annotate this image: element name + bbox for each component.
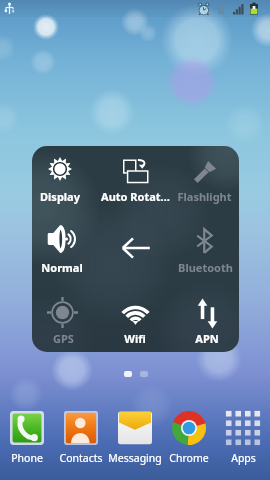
button[interactable] <box>170 146 239 215</box>
staticText: Phone <box>11 451 43 465</box>
staticText: APN <box>195 331 219 346</box>
button[interactable] <box>101 283 170 352</box>
staticText: Contacts <box>59 451 103 465</box>
staticText: Wifi <box>124 331 146 346</box>
button[interactable] <box>108 394 162 480</box>
staticText: Flashlight <box>177 189 232 204</box>
staticText: Messaging <box>108 451 162 465</box>
staticText: Apps <box>231 451 256 465</box>
button[interactable] <box>32 283 101 352</box>
staticText: Auto Rotat… <box>101 189 170 204</box>
staticText: Bluetooth <box>178 260 233 275</box>
staticText: Chrome <box>169 451 209 465</box>
button[interactable] <box>32 215 101 284</box>
button[interactable] <box>0 394 54 480</box>
button[interactable] <box>32 146 101 215</box>
button[interactable] <box>162 394 216 480</box>
staticText: Normal <box>41 260 83 275</box>
staticText: Display <box>40 189 80 204</box>
button[interactable] <box>170 215 239 284</box>
button[interactable] <box>101 146 170 215</box>
button[interactable] <box>170 283 239 352</box>
staticText: GPS <box>53 331 74 346</box>
button[interactable] <box>216 394 270 480</box>
button[interactable] <box>54 394 108 480</box>
button[interactable]: Back <box>101 215 170 284</box>
